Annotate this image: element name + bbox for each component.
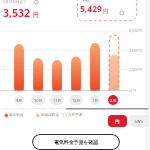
button[interactable]: 12月 xyxy=(69,95,83,105)
staticText: 10月 xyxy=(34,98,43,103)
button[interactable]: 10月 xyxy=(31,95,45,105)
staticText: 円 xyxy=(115,119,120,124)
staticText: kWh xyxy=(135,119,143,124)
staticText: 9月 xyxy=(16,98,23,103)
button[interactable]: 11月 xyxy=(50,95,64,105)
staticText: 確定料金 xyxy=(9,113,24,118)
staticText: 電気料金予測を確認 xyxy=(54,139,99,145)
staticText: 円 xyxy=(33,11,39,19)
button[interactable]: 予測 xyxy=(77,0,137,21)
staticText: 6,000 円 xyxy=(129,28,142,33)
staticText: 2月 xyxy=(110,98,117,103)
staticText: 11月 xyxy=(53,98,62,103)
staticText: 円 xyxy=(103,8,108,14)
staticText: 0 円 xyxy=(130,88,137,93)
button[interactable]: 9月 xyxy=(14,95,24,105)
staticText: 2,000 円 xyxy=(129,67,142,72)
staticText: 5,429 xyxy=(80,3,102,15)
staticText: 1月 xyxy=(92,98,99,103)
staticText: 当月予測 xyxy=(68,113,83,118)
staticText: 12月 xyxy=(72,98,81,103)
button[interactable]: 円 xyxy=(108,115,127,127)
button[interactable]: 2月 xyxy=(108,95,118,105)
button[interactable]: 電気料金予測を確認 xyxy=(32,134,120,150)
staticText: 4,000 円 xyxy=(129,48,142,53)
button[interactable]: 1月 xyxy=(90,95,100,105)
staticText: 予測 xyxy=(82,0,90,4)
staticText: 1月23日時点で xyxy=(3,0,27,4)
staticText: 3,532 xyxy=(3,6,31,20)
button[interactable]: kWh xyxy=(129,115,149,127)
staticText: 未確定料金 xyxy=(41,113,59,118)
